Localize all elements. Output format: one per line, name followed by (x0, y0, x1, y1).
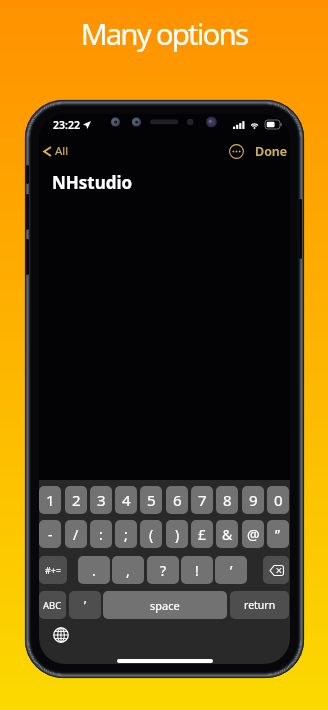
button[interactable]: £ (191, 520, 213, 548)
button[interactable]: 4 (115, 486, 137, 514)
staticText: ) (175, 525, 180, 544)
staticText: 7 (198, 490, 207, 510)
staticText: ! (195, 561, 199, 580)
button[interactable]: ? (147, 556, 179, 584)
staticText: 1 (46, 490, 55, 510)
button[interactable]: : (90, 520, 112, 548)
button[interactable]: All (41, 140, 71, 162)
button[interactable]: / (65, 520, 87, 548)
staticText: ? (160, 561, 167, 580)
staticText: & (222, 525, 233, 544)
button[interactable]: 6 (166, 486, 188, 514)
button[interactable]: #+= (39, 556, 67, 584)
button[interactable]: 5 (140, 486, 162, 514)
staticText: , (126, 561, 130, 580)
staticText: - (48, 525, 53, 544)
button[interactable]: 7 (191, 486, 213, 514)
button[interactable]: Done (255, 143, 288, 160)
button[interactable]: More options (229, 144, 244, 159)
staticText: space (150, 598, 180, 613)
button[interactable]: ( (140, 520, 162, 548)
staticText: return (244, 598, 276, 612)
button[interactable]: ’ (215, 556, 247, 584)
staticText: 9 (249, 490, 258, 510)
staticText: : (99, 525, 103, 544)
button[interactable]: Backspace (263, 556, 289, 584)
button[interactable]: 8 (216, 486, 238, 514)
button[interactable]: 2 (65, 486, 87, 514)
button[interactable]: ) (166, 520, 188, 548)
staticText: 23:22 (53, 118, 80, 132)
button[interactable]: @ (242, 520, 264, 548)
staticText: 8 (223, 490, 232, 510)
button[interactable]: 0 (267, 486, 289, 514)
button[interactable]: & (216, 520, 238, 548)
button[interactable]: , (112, 556, 144, 584)
staticText: 5 (147, 490, 156, 510)
staticText: Many options (0, 13, 328, 53)
button[interactable]: . (78, 556, 110, 584)
staticText: ; (124, 525, 128, 544)
button[interactable]: space (103, 591, 227, 619)
button[interactable]: 9 (242, 486, 264, 514)
staticText: . (92, 561, 96, 580)
staticText: #+= (45, 564, 62, 576)
staticText: ( (149, 525, 154, 544)
button[interactable]: ; (115, 520, 137, 548)
button[interactable]: 1 (39, 486, 61, 514)
button[interactable]: ! (181, 556, 213, 584)
staticText: @ (247, 525, 260, 544)
staticText: ” (275, 525, 281, 544)
staticText: ’ (230, 561, 233, 580)
button[interactable]: - (39, 520, 61, 548)
staticText: NHstudio (52, 171, 133, 194)
staticText: 0 (274, 490, 283, 510)
staticText: 3 (97, 490, 106, 510)
button[interactable]: return (230, 591, 289, 619)
staticText: 6 (173, 490, 182, 510)
button[interactable]: ” (267, 520, 289, 548)
staticText: £ (198, 525, 207, 544)
button[interactable]: 3 (90, 486, 112, 514)
button[interactable]: ’ (69, 591, 101, 619)
staticText: ABC (43, 599, 62, 612)
staticText: / (73, 525, 79, 544)
staticText: All (55, 143, 69, 159)
staticText: 2 (72, 490, 81, 510)
staticText: 4 (122, 490, 131, 510)
button[interactable]: Change keyboard (53, 627, 69, 643)
staticText: ’ (84, 597, 87, 613)
button[interactable]: ABC (39, 591, 66, 619)
